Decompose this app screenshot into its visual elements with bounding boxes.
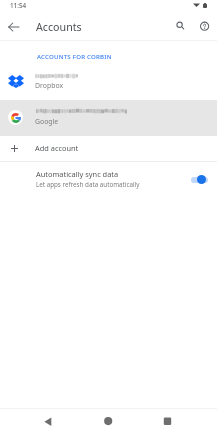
staticText: ACCOUNTS FOR CORBIN	[37, 52, 112, 60]
staticText: Let apps refresh data automatically	[36, 180, 140, 189]
button[interactable]: Home	[96, 409, 120, 434]
button[interactable]: Search	[169, 16, 190, 37]
button[interactable]: Back	[36, 409, 60, 434]
staticText: Accounts	[36, 20, 82, 35]
button[interactable]: Recent apps	[155, 409, 179, 434]
staticText: Google	[35, 117, 59, 126]
button[interactable]	[0, 135, 217, 161]
button[interactable]	[0, 64, 217, 99]
staticText: 11:54	[10, 1, 27, 10]
button[interactable]: Help	[194, 16, 215, 37]
button[interactable]: Navigate up	[3, 16, 24, 37]
button[interactable]: Automatically sync data	[187, 170, 211, 189]
button[interactable]	[0, 100, 217, 136]
staticText: Automatically sync data	[36, 169, 119, 179]
staticText: Dropbox	[35, 81, 64, 90]
staticText: Add account	[35, 143, 79, 153]
button[interactable]: Automatically sync data	[0, 162, 217, 190]
